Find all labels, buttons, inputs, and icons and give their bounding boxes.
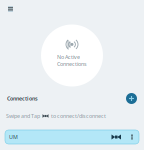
button[interactable]: UM [5,130,139,144]
staticText: No Active Connections [57,53,87,68]
staticText: to connect/disconnect [51,112,106,120]
button[interactable]: Menu [4,2,17,15]
staticText: Connections [7,95,38,102]
staticText: Swipe and Tap [6,112,40,120]
button[interactable]: Add connection [126,93,137,104]
staticText: UM [9,133,18,141]
